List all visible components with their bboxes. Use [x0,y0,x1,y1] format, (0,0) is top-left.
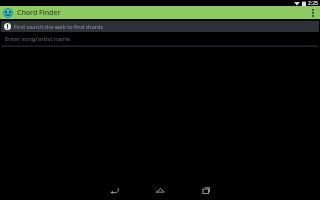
button[interactable]: Enter song/artist name [0,35,320,48]
staticText: Chord Finder [17,8,61,18]
button[interactable]: Back [104,180,124,200]
staticText: 2:25 [308,0,318,6]
button[interactable]: Recents [196,180,216,200]
button[interactable]: More options [308,6,318,19]
button[interactable]: Home [150,180,170,200]
staticText: Enter song/artist name [5,35,70,43]
button[interactable]: First search the web to find chords [1,21,319,32]
staticText: First search the web to find chords [14,23,104,30]
